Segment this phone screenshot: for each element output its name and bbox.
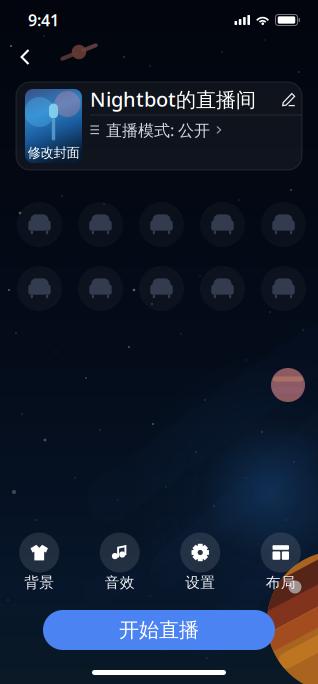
staticText: 修改封面 <box>27 145 79 161</box>
button[interactable]: 设置 <box>160 532 240 592</box>
staticText: 直播模式: 公开 <box>106 119 210 141</box>
button[interactable]: Empty seat <box>200 202 245 247</box>
staticText: Nightbot的直播间 <box>90 86 256 112</box>
button[interactable]: 开始直播 <box>43 610 275 650</box>
button[interactable]: Back <box>5 40 45 74</box>
staticText: 开始直播 <box>119 618 199 642</box>
button[interactable]: 音效 <box>79 532 160 592</box>
button[interactable]: 直播模式: 公开 <box>90 119 296 141</box>
button[interactable]: Empty seat <box>139 202 184 247</box>
button[interactable]: Empty seat <box>17 202 62 247</box>
button[interactable]: 修改封面 <box>25 89 82 163</box>
staticText: 音效 <box>105 573 135 591</box>
button[interactable]: Empty seat <box>17 266 62 311</box>
staticText: 设置 <box>185 573 215 591</box>
staticText: 背景 <box>24 573 54 591</box>
button[interactable]: Empty seat <box>200 266 245 311</box>
button[interactable]: Empty seat <box>139 266 184 311</box>
button[interactable]: Empty seat <box>78 202 123 247</box>
staticText: 布局 <box>266 573 296 591</box>
button[interactable]: 背景 <box>0 532 79 592</box>
staticText: 9:41 <box>28 9 59 31</box>
button[interactable]: Empty seat <box>261 266 306 311</box>
button[interactable]: Empty seat <box>261 202 306 247</box>
button[interactable]: 布局 <box>240 532 318 592</box>
button[interactable]: Empty seat <box>78 266 123 311</box>
button[interactable]: Edit room name <box>282 91 296 107</box>
